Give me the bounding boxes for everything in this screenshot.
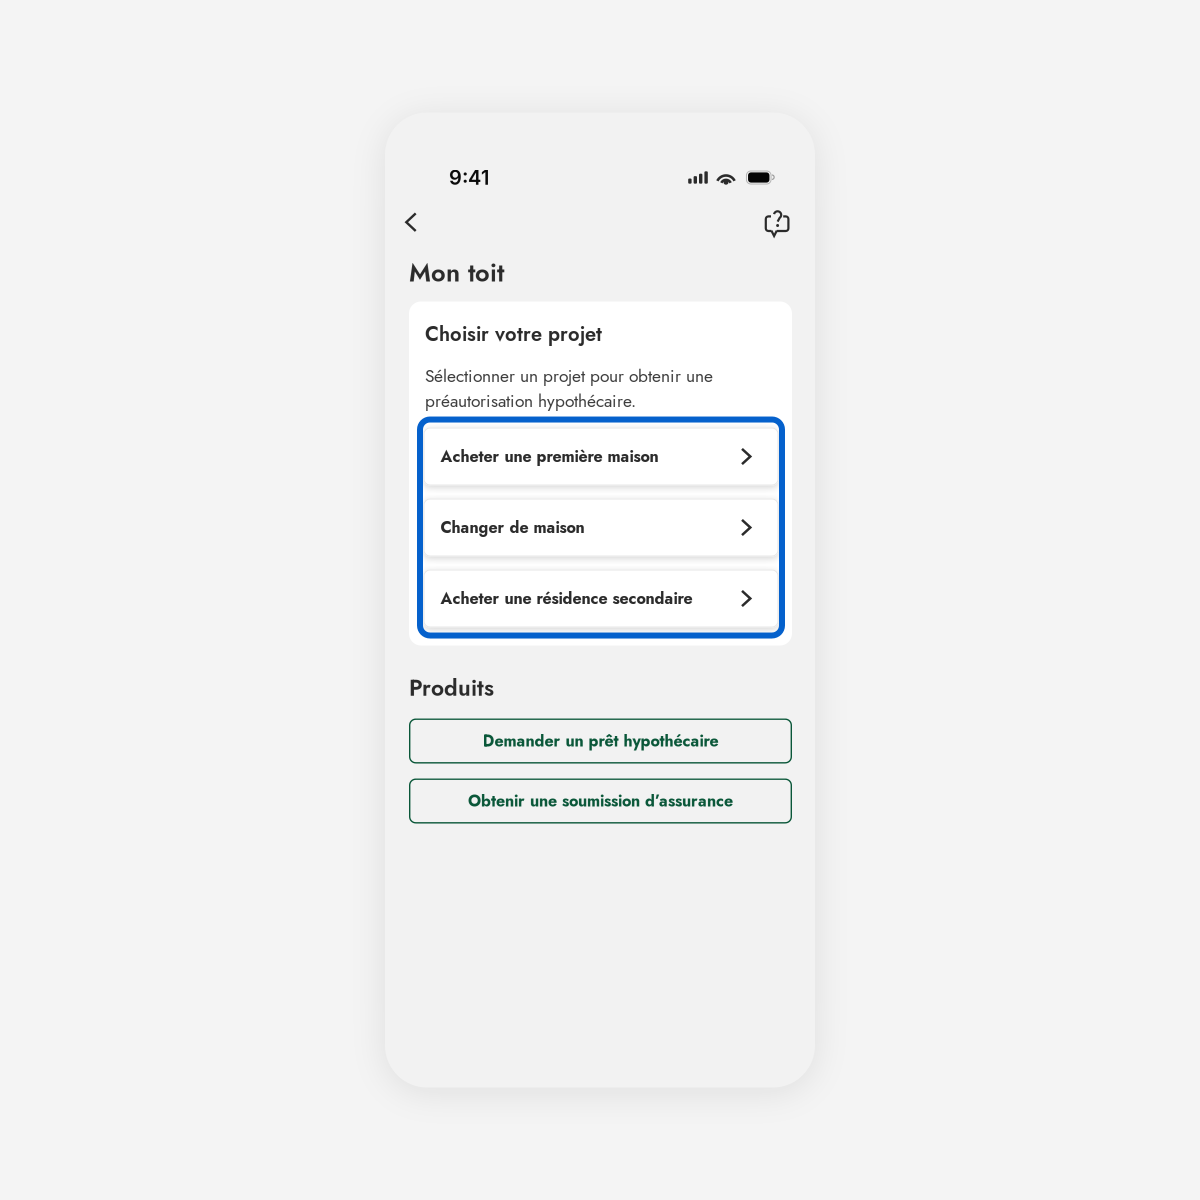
staticText: Obtenir une soumission d’assurance (468, 789, 733, 812)
staticText: Changer de maison (440, 516, 584, 539)
staticText: Acheter une première maison (440, 445, 658, 468)
staticText: Produits (409, 671, 494, 704)
staticText: Choisir votre projet (425, 319, 602, 348)
button[interactable]: Changer de maison (423, 498, 778, 556)
button[interactable]: Demander un prêt hypothécaire (409, 718, 792, 763)
button[interactable]: Obtenir une soumission d’assurance (409, 778, 792, 823)
staticText: Mon toit (409, 254, 504, 291)
button[interactable]: Acheter une première maison (423, 427, 778, 485)
staticText: Sélectionner un projet pour obtenir une … (425, 363, 713, 414)
button[interactable]: Acheter une résidence secondaire (423, 569, 778, 627)
button[interactable]: Back (393, 204, 429, 240)
staticText: Acheter une résidence secondaire (440, 587, 692, 610)
button[interactable]: Help (756, 204, 792, 240)
staticText: Demander un prêt hypothécaire (482, 729, 718, 752)
staticText: 9:41 (449, 165, 489, 190)
